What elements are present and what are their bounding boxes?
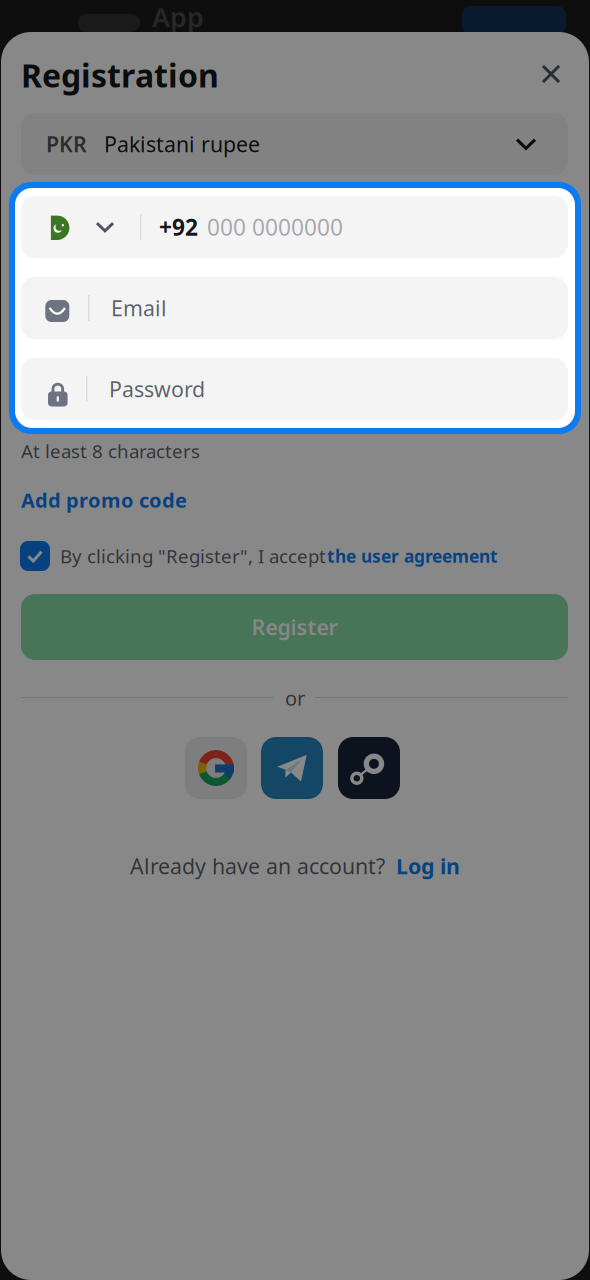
button[interactable]: Log in [396, 853, 462, 879]
staticText: Register [251, 613, 337, 641]
staticText: Log in [396, 852, 460, 880]
staticText: +92 [159, 212, 198, 242]
button[interactable]: Accept the user agreement [20, 541, 50, 571]
staticText: Already have an account? [130, 852, 385, 880]
staticText: By clicking "Register", I accept [60, 544, 326, 568]
button[interactable]: +92 [21, 196, 568, 258]
button[interactable]: Sign up with Google [185, 737, 247, 799]
staticText: Password [109, 375, 205, 403]
staticText: Add promo code [21, 487, 187, 513]
button[interactable]: Close [534, 57, 568, 91]
button[interactable]: Sign up with Steam [338, 737, 400, 799]
staticText: the user agreement [327, 544, 498, 567]
staticText: PKR [46, 130, 87, 158]
button[interactable]: Password [21, 358, 568, 420]
staticText: or [285, 685, 305, 711]
staticText: Pakistani rupee [104, 130, 260, 158]
staticText: App [152, 0, 204, 35]
button[interactable]: Add promo code [21, 487, 201, 513]
staticText: At least 8 characters [21, 439, 200, 463]
button[interactable]: Sign up with Telegram [261, 737, 323, 799]
staticText: Registration [21, 54, 219, 96]
button[interactable]: Email [21, 277, 568, 339]
button[interactable]: the user agreement [327, 543, 502, 569]
button[interactable]: PKR [21, 113, 568, 175]
staticText: Email [111, 294, 167, 322]
button[interactable]: Register [21, 594, 568, 660]
staticText: 000 0000000 [207, 212, 343, 242]
